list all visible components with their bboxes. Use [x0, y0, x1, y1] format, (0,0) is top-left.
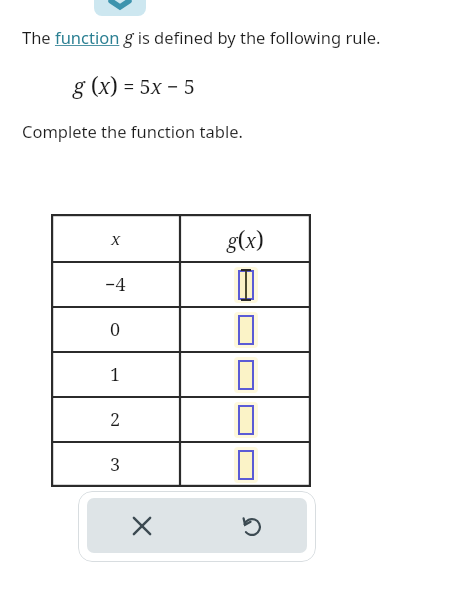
button[interactable]: Collapse [94, 0, 146, 16]
staticText: 3 [110, 452, 121, 477]
button[interactable]: Clear [87, 498, 197, 553]
staticText: Complete the function table. [22, 120, 243, 142]
staticText: The function g is defined by the followi… [22, 25, 381, 49]
button[interactable]: Answer input [231, 401, 261, 439]
button[interactable]: Undo [197, 498, 307, 553]
staticText: x [111, 227, 121, 250]
staticText: 1 [110, 362, 121, 387]
staticText: g(x) [227, 223, 264, 254]
button[interactable]: Answer input [231, 266, 261, 304]
button[interactable]: Answer input [231, 446, 261, 484]
staticText: 2 [110, 407, 121, 432]
staticText: −4 [105, 272, 126, 297]
staticText: g (x) = 5x − 5 [73, 69, 195, 100]
button[interactable]: Answer input [231, 356, 261, 394]
staticText: 0 [110, 317, 121, 342]
button[interactable]: Answer input [231, 311, 261, 349]
